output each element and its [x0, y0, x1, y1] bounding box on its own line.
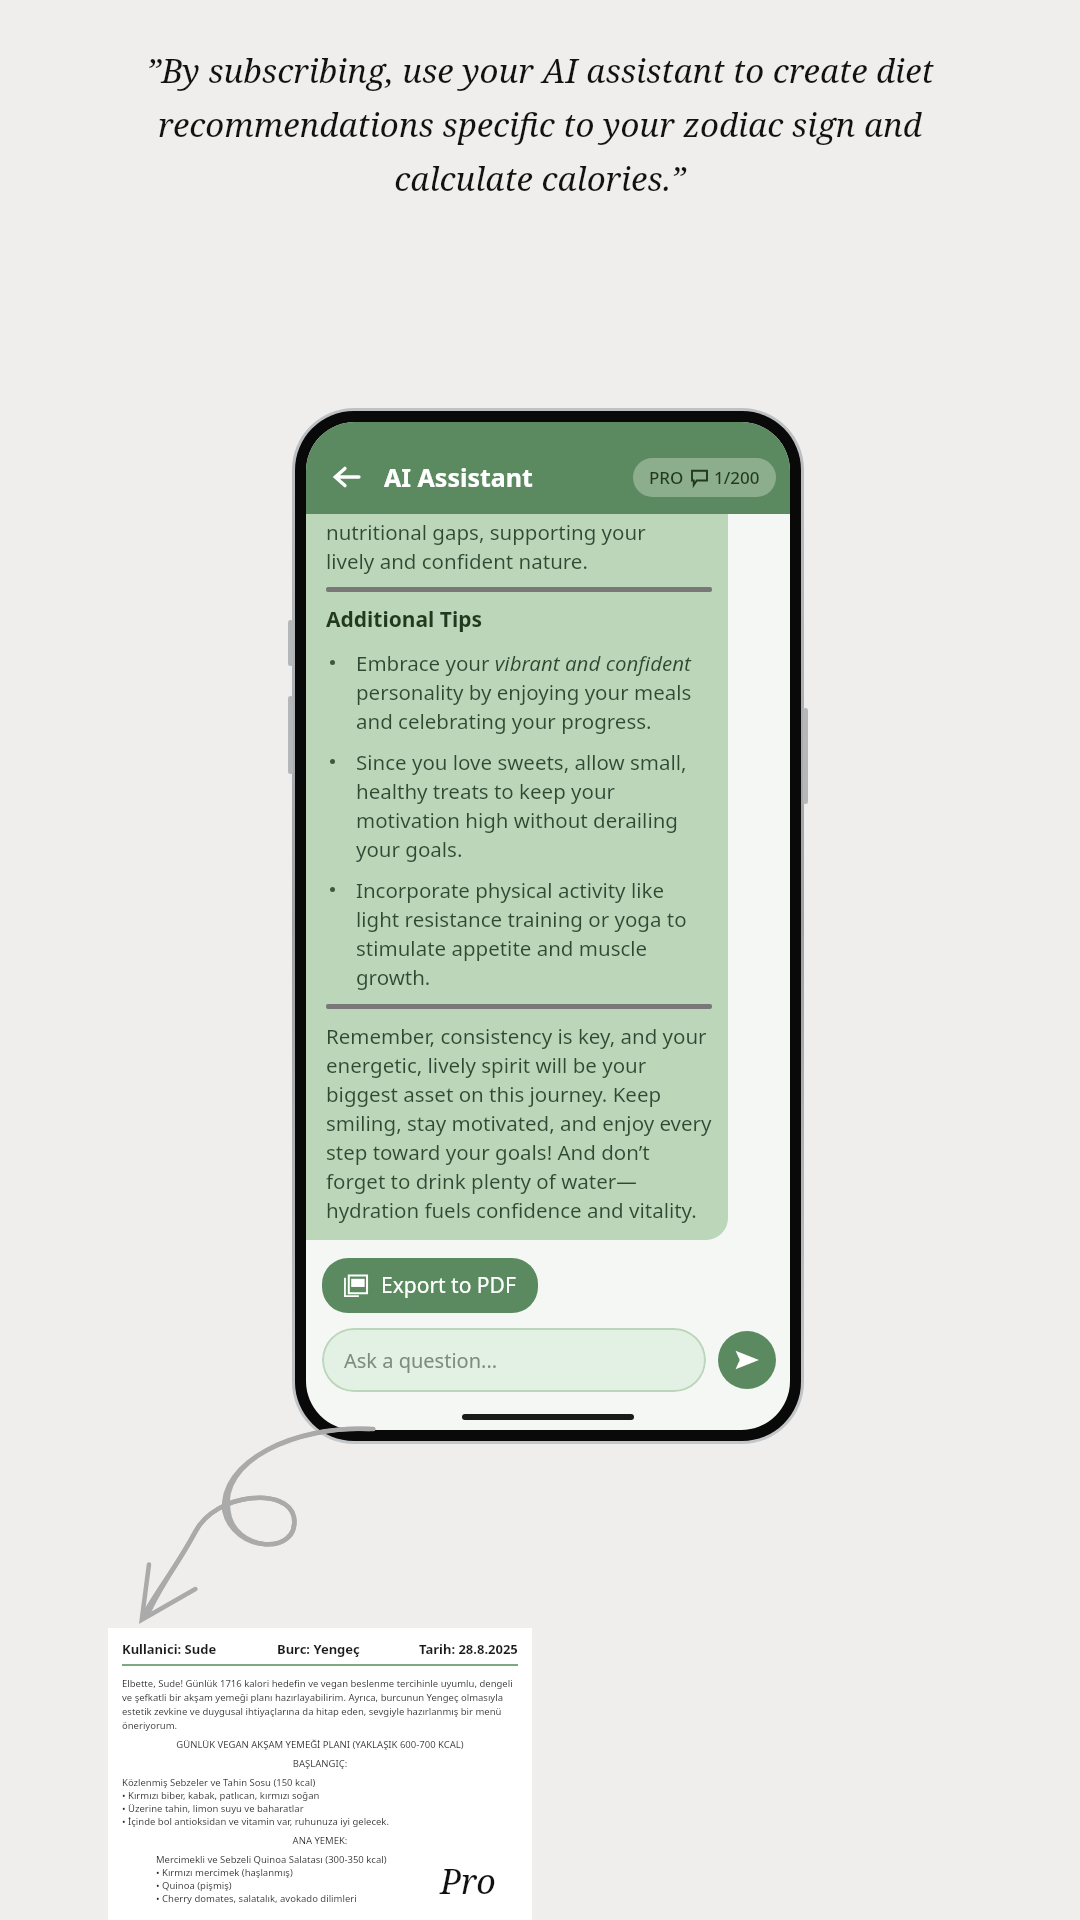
staticText: • İçinde bol antioksidan ve vitamin var,…: [122, 1815, 389, 1828]
button[interactable]: Export to PDF: [322, 1258, 538, 1313]
staticText: Ask a question...: [344, 1347, 498, 1374]
staticText: • Kırmızı mercimek (haşlanmış): [156, 1866, 293, 1879]
button[interactable]: Ask a question...: [322, 1328, 706, 1392]
staticText: Közlenmiş Sebzeler ve Tahin Sosu (150 kc…: [122, 1776, 316, 1789]
staticText: • Üzerine tahin, limon suyu ve baharatla…: [122, 1802, 304, 1815]
button[interactable]: Back: [324, 454, 370, 500]
staticText: PRO: [649, 466, 684, 489]
staticText: AI Assistant: [384, 460, 533, 494]
staticText: ANA YEMEK:: [122, 1834, 518, 1847]
staticText: Incorporate physical activity like light…: [356, 876, 712, 991]
staticText: BAŞLANGIÇ:: [122, 1757, 518, 1770]
button[interactable]: Send: [718, 1331, 776, 1389]
staticText: ”By subscribing, use your AI assistant t…: [96, 48, 984, 201]
staticText: Mercimekli ve Sebzeli Quinoa Salatası (3…: [156, 1853, 387, 1866]
staticText: Export to PDF: [381, 1271, 516, 1300]
button[interactable]: PRO: [633, 458, 776, 497]
staticText: nutritional gaps, supporting your lively…: [326, 518, 646, 575]
staticText: • Cherry domates, salatalık, avokado dil…: [156, 1892, 357, 1905]
staticText: • Kırmızı biber, kabak, patlıcan, kırmız…: [122, 1789, 320, 1802]
staticText: Kullanici: Sude: [122, 1640, 217, 1658]
staticText: Embrace your vibrant and confident perso…: [356, 649, 712, 735]
staticText: Pro: [440, 1858, 496, 1904]
staticText: Additional Tips: [326, 605, 483, 634]
staticText: 1/200: [714, 466, 760, 489]
staticText: Tarih: 28.8.2025: [419, 1640, 518, 1658]
staticText: • Quinoa (pişmiş): [156, 1879, 232, 1892]
staticText: Remember, consistency is key, and your e…: [326, 1022, 712, 1224]
staticText: Since you love sweets, allow small, heal…: [356, 748, 712, 863]
staticText: Elbette, Sude! Günlük 1716 kalori hedefi…: [122, 1677, 518, 1732]
staticText: Burc: Yengeç: [277, 1640, 360, 1658]
staticText: GÜNLÜK VEGAN AKŞAM YEMEĞİ PLANI (YAKLAŞI…: [122, 1738, 518, 1751]
